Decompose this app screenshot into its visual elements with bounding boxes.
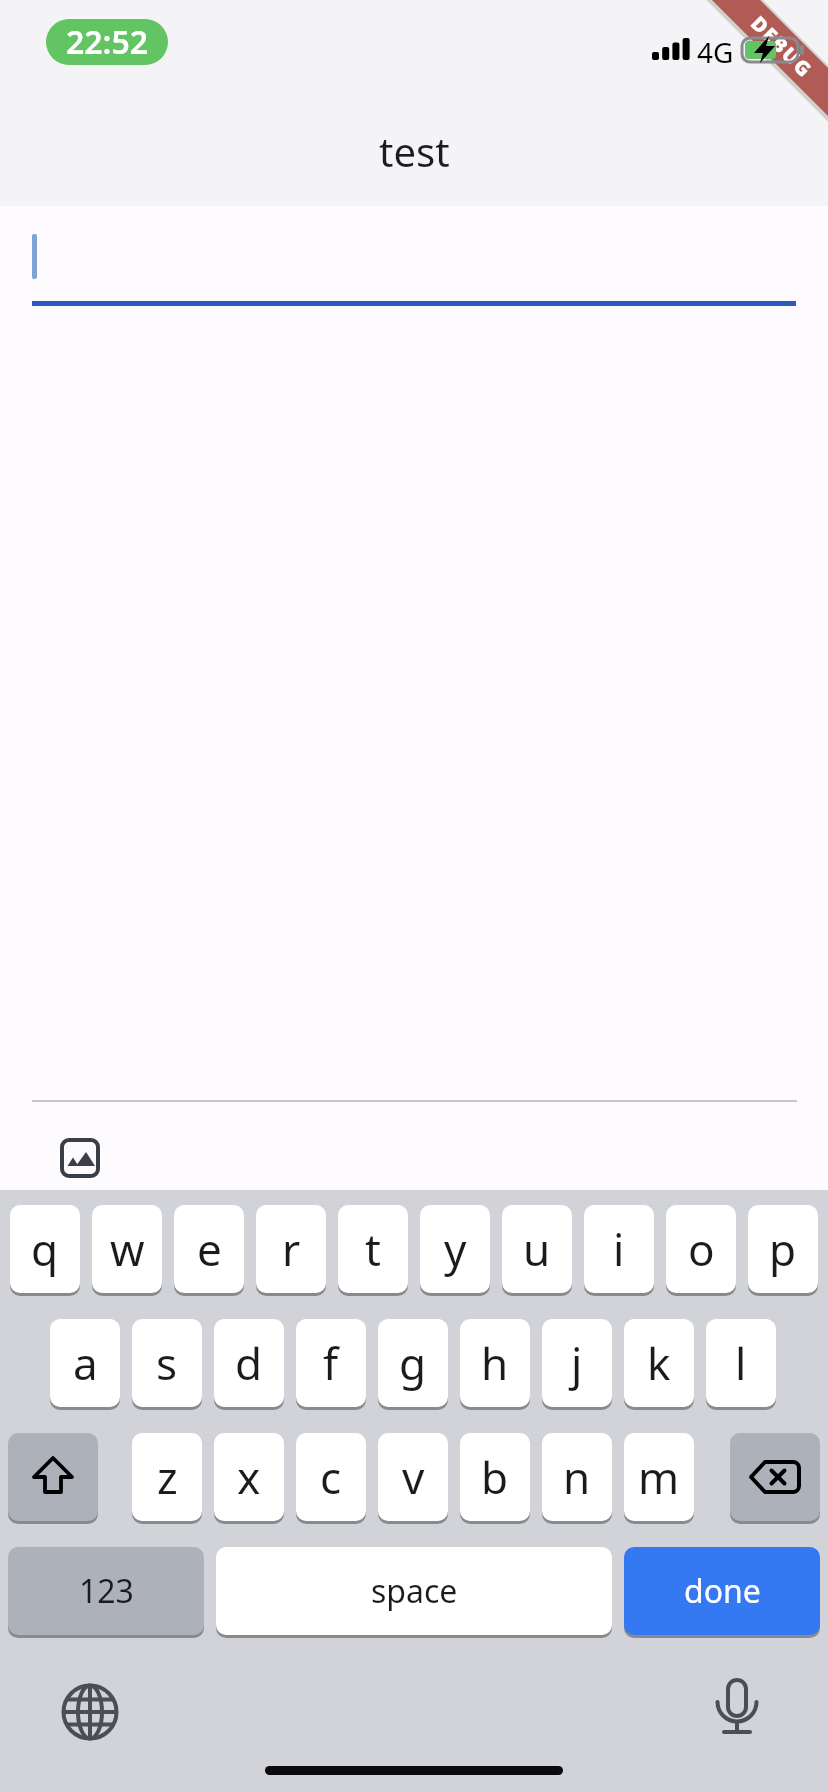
staticText: 4G [697,33,734,71]
staticText: j [571,1333,583,1393]
button[interactable]: j [542,1319,612,1407]
button[interactable]: b [460,1433,530,1521]
button[interactable]: u [502,1205,572,1293]
button[interactable]: d [214,1319,284,1407]
staticText: t [365,1219,381,1279]
button[interactable]: o [666,1205,736,1293]
staticText: d [235,1333,263,1393]
button[interactable]: done [624,1547,820,1635]
button[interactable]: y [420,1205,490,1293]
button[interactable] [705,1672,769,1748]
staticText: done [684,1569,761,1613]
staticText: v [402,1447,425,1507]
staticText: a [73,1333,98,1393]
staticText: q [31,1219,59,1279]
button[interactable]: g [378,1319,448,1407]
button[interactable]: e [174,1205,244,1293]
button[interactable]: l [706,1319,776,1407]
button[interactable]: c [296,1433,366,1521]
button[interactable]: h [460,1319,530,1407]
staticText: h [481,1333,509,1393]
button[interactable]: q [10,1205,80,1293]
staticText: 123 [79,1569,134,1613]
button[interactable]: s [132,1319,202,1407]
staticText: m [638,1447,680,1507]
staticText: l [735,1333,747,1393]
staticText: z [157,1447,178,1507]
button[interactable]: p [748,1205,818,1293]
staticText: o [688,1219,715,1279]
staticText: s [156,1333,178,1393]
staticText: c [320,1447,342,1507]
button[interactable]: w [92,1205,162,1293]
button[interactable]: t [338,1205,408,1293]
staticText: w [110,1219,145,1279]
staticText: r [282,1219,301,1279]
button[interactable]: k [624,1319,694,1407]
staticText: e [197,1219,222,1279]
staticText: y [444,1219,467,1279]
button[interactable]: 123 [8,1547,204,1635]
staticText: f [323,1333,339,1393]
button[interactable]: a [50,1319,120,1407]
staticText: i [613,1219,625,1279]
staticText: u [523,1219,551,1279]
staticText: 22:52 [66,20,149,64]
button[interactable]: f [296,1319,366,1407]
staticText: g [399,1333,427,1393]
staticText: DEBUG [745,10,819,83]
button[interactable]: x [214,1433,284,1521]
button[interactable]: r [256,1205,326,1293]
button[interactable]: 22:52 [46,19,168,65]
button[interactable]: v [378,1433,448,1521]
staticText: space [371,1569,458,1613]
button[interactable] [730,1433,820,1521]
button[interactable]: m [624,1433,694,1521]
staticText: k [647,1333,671,1393]
staticText: p [769,1219,797,1279]
button[interactable]: space [216,1547,612,1635]
staticText: test [379,124,450,178]
button[interactable] [32,220,796,310]
staticText: b [481,1447,509,1507]
button[interactable]: n [542,1433,612,1521]
button[interactable] [54,1132,106,1184]
staticText: n [563,1447,591,1507]
staticText: x [237,1447,261,1507]
button[interactable]: i [584,1205,654,1293]
button[interactable]: z [132,1433,202,1521]
button[interactable] [8,1433,98,1521]
button[interactable] [56,1678,124,1746]
